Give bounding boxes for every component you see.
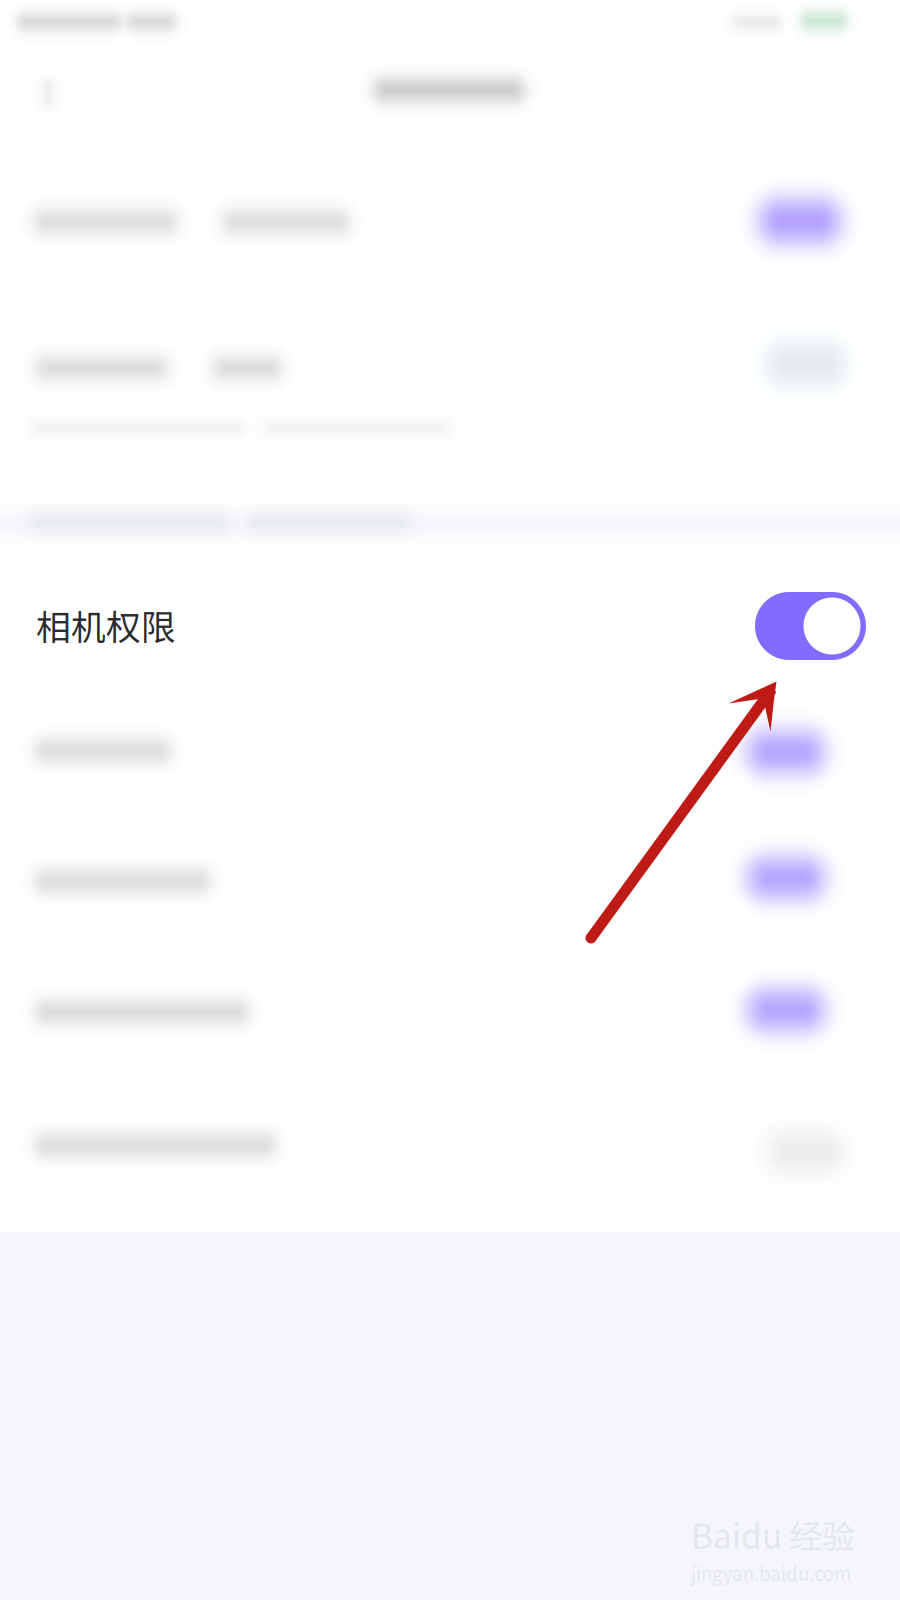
staticText: Baidu 经验 [691,1510,855,1558]
button[interactable]: 相机权限 [36,594,456,656]
staticText: 相机权限 [36,600,176,650]
button[interactable]: 相机权限开关 [755,592,866,660]
staticText: jingyan.baidu.com [691,1559,851,1586]
